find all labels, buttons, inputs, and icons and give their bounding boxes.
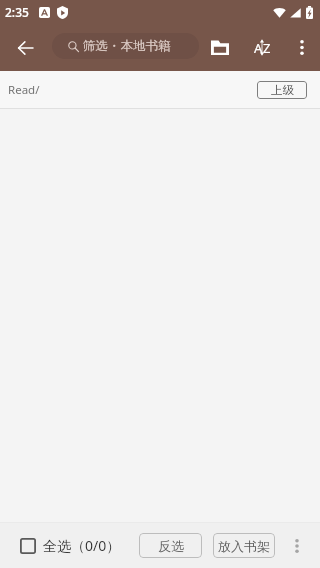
button[interactable]: Folder: [199, 24, 241, 71]
staticText: 2:35: [5, 4, 29, 20]
button[interactable]: Sort A to Z: [241, 24, 283, 71]
staticText: 放入书架: [218, 538, 270, 554]
button[interactable]: More options: [275, 523, 319, 568]
staticText: 上级: [271, 83, 294, 97]
button[interactable]: More options: [283, 24, 320, 71]
button[interactable]: 筛选・本地书籍: [52, 33, 199, 59]
staticText: Read/: [8, 82, 40, 98]
button[interactable]: 上级: [257, 81, 307, 99]
staticText: Z: [263, 39, 271, 57]
staticText: 筛选・本地书籍: [83, 38, 171, 54]
button[interactable]: 全选（0/0）: [20, 536, 121, 555]
button[interactable]: Back: [0, 24, 48, 71]
staticText: 反选: [158, 538, 184, 554]
button[interactable]: 反选: [139, 533, 202, 558]
staticText: 全选（0/0）: [43, 536, 121, 555]
button[interactable]: 放入书架: [213, 533, 275, 558]
staticText: A: [254, 39, 263, 57]
